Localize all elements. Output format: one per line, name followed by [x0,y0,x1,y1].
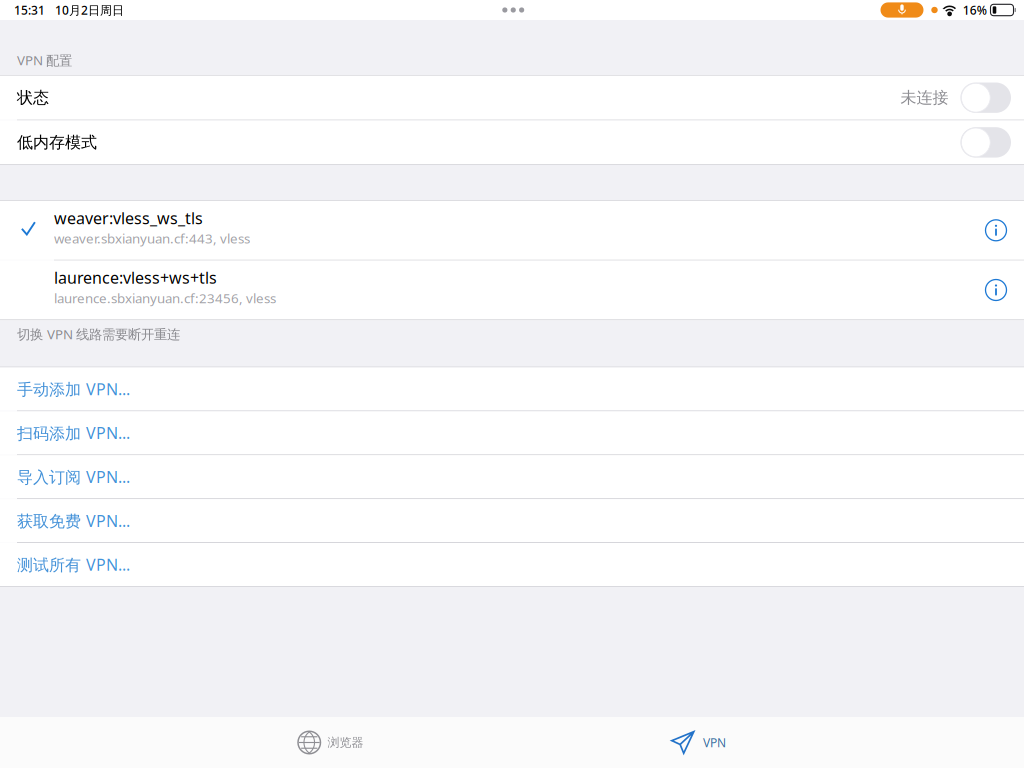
button[interactable]: 手动添加 VPN... [0,367,1024,411]
staticText: VPN [703,734,726,750]
button[interactable]: 浏览器 [298,717,363,768]
button[interactable]: Info [981,275,1011,305]
button[interactable]: 状态 [0,76,1024,120]
button[interactable]: laurence:vless+ws+tls [0,260,1024,319]
staticText: 低内存模式 [17,133,97,152]
button[interactable]: 扫码添加 VPN... [0,411,1024,454]
button[interactable]: 导入订阅 VPN... [0,455,1024,498]
staticText: 获取免费 VPN... [17,510,130,531]
button[interactable]: 获取免费 VPN... [0,499,1024,542]
staticText: 导入订阅 VPN... [17,466,130,487]
staticText: weaver:vless_ws_tls [54,207,203,228]
button[interactable]: 测试所有 VPN... [0,543,1024,586]
button[interactable]: weaver:vless_ws_tls [0,201,1024,260]
staticText: 切换 VPN 线路需要断开重连 [17,325,180,343]
staticText: weaver.sbxianyuan.cf:443, vless [54,230,250,247]
staticText: 10月2日周日 [55,2,124,18]
staticText: laurence.sbxianyuan.cf:23456, vless [54,289,276,307]
staticText: 测试所有 VPN... [17,554,130,575]
button[interactable]: 低内存模式 [0,120,1024,164]
staticText: 16% [963,2,987,18]
staticText: 浏览器 [327,735,363,750]
staticText: 未连接 [900,88,948,108]
staticText: 手动添加 VPN... [17,378,130,400]
staticText: 15:31 [14,2,45,18]
staticText: VPN 配置 [17,51,72,69]
button[interactable]: Info [981,215,1011,245]
staticText: 扫码添加 VPN... [17,422,130,443]
button[interactable]: VPN [671,717,726,768]
staticText: laurence:vless+ws+tls [54,267,217,288]
staticText: 状态 [17,88,49,108]
